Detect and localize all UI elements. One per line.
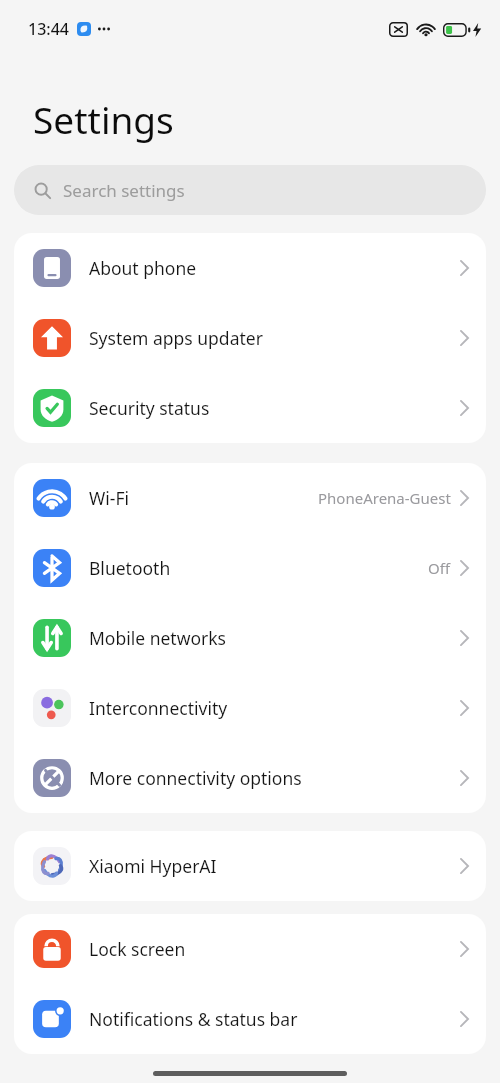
button[interactable]: Notifications & status bar [14,984,486,1054]
button[interactable]: More connectivity options [14,743,486,813]
staticText: Interconnectivity [89,696,228,720]
staticText: Security status [89,396,210,420]
staticText: About phone [89,256,197,280]
button[interactable]: Interconnectivity [14,673,486,743]
staticText: Wi-Fi [89,486,130,510]
staticText: Notifications & status bar [89,1007,298,1031]
staticText: Xiaomi HyperAI [89,854,217,878]
button[interactable]: System apps updater [14,303,486,373]
button[interactable]: About phone [14,233,486,303]
button[interactable]: Bluetooth [14,533,486,603]
staticText: Mobile networks [89,626,226,650]
staticText: 13:44 [28,18,69,40]
button[interactable]: Wi-Fi [14,463,486,533]
staticText: Bluetooth [89,556,171,580]
staticText: System apps updater [89,326,263,350]
button[interactable]: Security status [14,373,486,443]
button[interactable]: Search settings [14,165,486,215]
staticText: Off [428,558,451,578]
staticText: PhoneArena-Guest [318,488,451,508]
staticText: Settings [33,94,174,144]
staticText: Search settings [63,179,185,202]
staticText: Lock screen [89,937,186,961]
button[interactable]: Xiaomi HyperAI [14,831,486,901]
button[interactable]: Mobile networks [14,603,486,673]
button[interactable]: Lock screen [14,914,486,984]
staticText: More connectivity options [89,766,302,790]
